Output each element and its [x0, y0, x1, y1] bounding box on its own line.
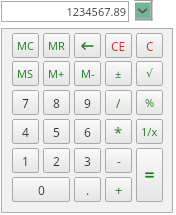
button[interactable]	[136, 148, 163, 202]
button[interactable]: 8	[43, 90, 70, 115]
button[interactable]: C	[136, 33, 163, 58]
button[interactable]: 9	[74, 90, 101, 115]
button[interactable]: √	[136, 61, 163, 86]
button[interactable]: MR	[43, 33, 70, 58]
staticText: CE	[111, 38, 126, 54]
staticText: M-	[81, 66, 95, 81]
button[interactable]: %	[136, 90, 163, 115]
button[interactable]: .	[74, 177, 101, 202]
staticText: 8	[53, 95, 60, 111]
staticText: +	[115, 181, 123, 199]
staticText: .	[86, 182, 90, 198]
staticText: C	[146, 38, 154, 54]
button[interactable]: 5	[43, 119, 70, 144]
staticText: 5	[53, 124, 60, 140]
staticText: 1/x	[141, 124, 158, 139]
staticText: -	[117, 153, 121, 169]
button[interactable]: +	[105, 177, 132, 202]
staticText: MR	[48, 38, 65, 53]
button[interactable]	[133, 0, 154, 22]
button[interactable]: 1	[12, 148, 39, 173]
staticText: MC	[17, 38, 34, 53]
button[interactable]: /	[105, 90, 132, 115]
staticText: *	[114, 122, 123, 142]
staticText: 4	[22, 124, 29, 140]
staticText: 2	[53, 153, 60, 169]
button[interactable]: M+	[43, 61, 70, 86]
staticText: 7	[22, 95, 29, 111]
staticText: 6	[84, 124, 91, 140]
button[interactable]: M-	[74, 61, 101, 86]
staticText: MS	[17, 66, 34, 81]
button[interactable]: 0	[12, 177, 70, 202]
staticText: 3	[84, 153, 91, 169]
button[interactable]: 4	[12, 119, 39, 144]
button[interactable]: 6	[74, 119, 101, 144]
staticText: 1234567.89	[66, 4, 126, 19]
button[interactable]: *	[105, 119, 132, 144]
staticText: 9	[84, 95, 91, 111]
button[interactable]: 3	[74, 148, 101, 173]
button[interactable]: ±	[105, 61, 132, 86]
button[interactable]: MS	[12, 61, 39, 86]
button[interactable]: -	[105, 148, 132, 173]
staticText: 1	[22, 153, 29, 169]
staticText: /	[116, 95, 121, 111]
button[interactable]: CE	[105, 33, 132, 58]
staticText: √	[146, 67, 154, 80]
button[interactable]: MC	[12, 33, 39, 58]
staticText: ±	[115, 66, 122, 81]
button[interactable]: 2	[43, 148, 70, 173]
button[interactable]: 1/x	[136, 119, 163, 144]
button[interactable]	[74, 33, 101, 58]
button[interactable]: 7	[12, 90, 39, 115]
staticText: %	[145, 95, 155, 110]
button[interactable]: 1234567.89	[1, 1, 129, 22]
staticText: M+	[48, 66, 65, 81]
staticText: 0	[38, 182, 45, 198]
